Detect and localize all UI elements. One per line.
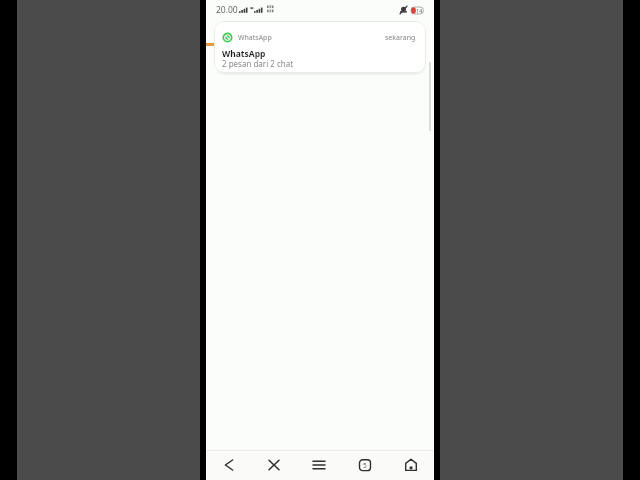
staticText: 2 pesan dari 2 chat [222, 58, 294, 69]
button[interactable] [296, 450, 342, 480]
staticText: WhatsApp [238, 33, 272, 43]
staticText: sekarang [385, 33, 416, 43]
button[interactable]: WhatsApp [214, 21, 426, 73]
staticText: 5 [363, 461, 367, 470]
staticText: 14 [416, 7, 423, 14]
button[interactable]: 5 [342, 450, 388, 480]
button[interactable] [206, 450, 251, 480]
button[interactable] [251, 450, 296, 480]
staticText: 20.00 [216, 4, 238, 16]
staticText: WhatsApp [222, 48, 266, 60]
button[interactable] [388, 450, 434, 480]
